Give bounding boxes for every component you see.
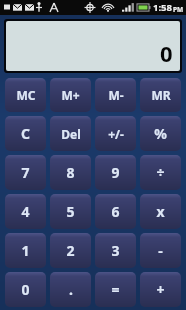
button[interactable]: 8	[50, 155, 91, 190]
button[interactable]: +	[140, 272, 181, 307]
staticText: 0	[160, 38, 173, 68]
staticText: M-	[108, 87, 124, 103]
staticText: +	[156, 280, 165, 299]
staticText: %	[154, 124, 167, 143]
button[interactable]: 5	[50, 194, 91, 229]
staticText: 1	[21, 241, 30, 260]
button[interactable]: M+	[50, 78, 91, 112]
staticText: 6	[111, 202, 120, 221]
staticText: +/-	[108, 126, 124, 142]
staticText: 0	[21, 280, 30, 299]
button[interactable]: C	[5, 116, 46, 151]
button[interactable]: 0	[5, 272, 46, 307]
button[interactable]: .	[50, 272, 91, 307]
staticText: 5	[66, 202, 75, 221]
staticText: 4	[21, 202, 30, 221]
staticText: PM	[173, 5, 184, 14]
staticText: =	[111, 280, 120, 299]
staticText: MC	[16, 87, 36, 103]
staticText: .	[69, 280, 73, 299]
staticText: -	[158, 241, 163, 260]
button[interactable]: x	[140, 194, 181, 229]
staticText: 2	[66, 241, 75, 260]
staticText: ÷	[156, 163, 165, 182]
button[interactable]: MC	[5, 78, 46, 112]
button[interactable]: MR	[140, 78, 181, 112]
button[interactable]: 6	[95, 194, 136, 229]
staticText: Del	[61, 126, 81, 142]
staticText: 7	[21, 163, 30, 182]
staticText: C	[21, 124, 30, 143]
button[interactable]: M-	[95, 78, 136, 112]
button[interactable]: 2	[50, 233, 91, 268]
button[interactable]: %	[140, 116, 181, 151]
button[interactable]: +/-	[95, 116, 136, 151]
button[interactable]: ÷	[140, 155, 181, 190]
button[interactable]: Del	[50, 116, 91, 151]
button[interactable]: 1	[5, 233, 46, 268]
button[interactable]: 3	[95, 233, 136, 268]
button[interactable]: -	[140, 233, 181, 268]
staticText: 3	[111, 241, 120, 260]
button[interactable]: 9	[95, 155, 136, 190]
staticText: MR	[151, 87, 171, 103]
staticText: M+	[61, 87, 80, 103]
button[interactable]: 7	[5, 155, 46, 190]
button[interactable]: =	[95, 272, 136, 307]
staticText: 9	[111, 163, 120, 182]
staticText: 1:58	[153, 1, 172, 14]
staticText: 8	[66, 163, 75, 182]
staticText: x	[156, 202, 165, 221]
button[interactable]: 4	[5, 194, 46, 229]
button[interactable]: 0	[6, 21, 180, 71]
